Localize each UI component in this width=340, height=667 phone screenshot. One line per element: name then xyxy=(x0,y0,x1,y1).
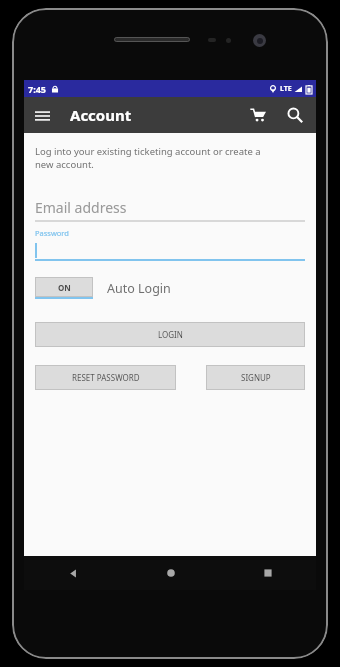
staticText: LOGIN xyxy=(158,329,183,340)
staticText: LTE xyxy=(280,84,292,94)
button[interactable]: Shopping cart xyxy=(240,97,276,133)
button[interactable]: Back xyxy=(24,556,122,590)
button[interactable]: RESET PASSWORD xyxy=(35,365,176,390)
button[interactable]: SIGNUP xyxy=(206,365,305,390)
staticText: SIGNUP xyxy=(241,372,271,383)
staticText: 7:45 xyxy=(28,83,46,95)
button[interactable]: Home xyxy=(122,556,219,590)
button[interactable]: Password xyxy=(35,228,305,261)
button[interactable]: LOGIN xyxy=(35,322,305,347)
staticText: Account xyxy=(70,105,132,125)
staticText: Auto Login xyxy=(107,280,171,297)
staticText: RESET PASSWORD xyxy=(72,372,140,383)
button[interactable]: Recent apps xyxy=(219,556,316,590)
button[interactable]: Search xyxy=(276,97,314,133)
button[interactable]: Email address xyxy=(35,196,305,222)
staticText: Log into your existing ticketing account… xyxy=(35,145,261,171)
button[interactable]: Open navigation menu xyxy=(24,97,60,133)
staticText: Email address xyxy=(35,198,127,217)
button[interactable]: ON xyxy=(35,277,93,299)
staticText: ON xyxy=(58,282,71,293)
staticText: Password xyxy=(35,228,69,238)
